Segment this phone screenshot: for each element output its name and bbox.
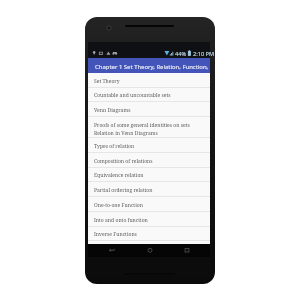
button[interactable]: Chapter 1 Set Theory, Relation, Function… bbox=[88, 58, 210, 73]
staticText: Venn Diagrams bbox=[94, 107, 131, 114]
staticText: Inverse Functions bbox=[94, 231, 137, 238]
button[interactable]: Composition of relations bbox=[88, 153, 210, 168]
button[interactable]: Venn Diagrams bbox=[88, 102, 210, 117]
staticText: Chapter 1 Set Theory, Relation, Function… bbox=[95, 63, 208, 71]
button[interactable]: Countable and uncountable sets bbox=[88, 87, 210, 102]
button[interactable]: One-to-one Function bbox=[88, 197, 210, 212]
staticText: Into and onto function bbox=[94, 217, 148, 224]
staticText: Types of relation bbox=[94, 143, 135, 150]
button[interactable]: Home bbox=[143, 245, 157, 255]
button[interactable]: Back bbox=[105, 245, 119, 255]
staticText: Countable and uncountable sets bbox=[94, 92, 171, 99]
button[interactable]: Set Theory bbox=[88, 73, 210, 88]
staticText: 44% bbox=[175, 50, 187, 58]
button[interactable]: Recent apps bbox=[180, 245, 194, 255]
button[interactable]: Proofs of some general identities on set… bbox=[88, 117, 210, 138]
staticText: Set Theory bbox=[94, 78, 120, 85]
staticText: Proofs of some general identities on set… bbox=[94, 122, 190, 136]
staticText: Composition of relations bbox=[94, 158, 153, 165]
staticText: One-to-one Function bbox=[94, 202, 143, 209]
button[interactable]: Types of relation bbox=[88, 138, 210, 153]
button[interactable]: Partial ordering relation bbox=[88, 182, 210, 197]
staticText: 2:10 PM bbox=[193, 50, 215, 58]
button[interactable]: Inverse Functions bbox=[88, 226, 210, 241]
staticText: Equivalence relation bbox=[94, 172, 144, 179]
button[interactable]: Into and onto function bbox=[88, 212, 210, 227]
button[interactable]: Equivalence relation bbox=[88, 167, 210, 182]
staticText: Partial ordering relation bbox=[94, 187, 153, 194]
